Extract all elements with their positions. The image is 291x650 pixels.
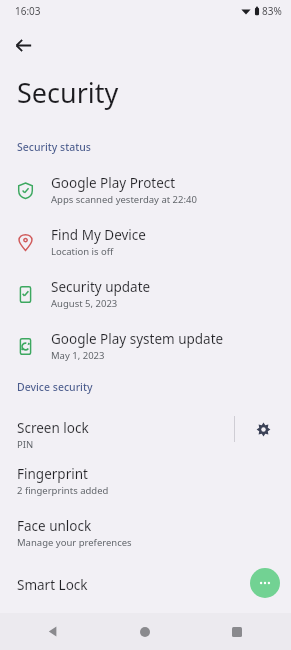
staticText: PIN [17, 438, 34, 451]
button[interactable]: Smart Lock [0, 559, 291, 611]
button[interactable]: Fingerprint [0, 455, 291, 507]
staticText: Smart Lock [17, 576, 88, 594]
staticText: Screen lock [17, 419, 89, 437]
button[interactable]: Google Play Protect [0, 164, 291, 216]
staticText: Security status [17, 140, 91, 154]
button[interactable]: Find My Device [0, 216, 291, 268]
staticText: Manage your preferences [17, 536, 132, 549]
staticText: Fingerprint [17, 465, 88, 483]
button[interactable]: Screen lock settings [235, 403, 291, 455]
staticText: No active apps [17, 634, 83, 647]
staticText: May 1, 2023 [51, 349, 105, 362]
staticText: Device security [17, 380, 93, 394]
staticText: Security [17, 74, 119, 111]
staticText: Apps scanned yesterday at 22:40 [51, 193, 197, 206]
staticText: Google Play system update [51, 330, 224, 348]
button[interactable]: Back [6, 28, 40, 62]
staticText: August 5, 2023 [51, 297, 118, 310]
staticText: Device admin apps [17, 615, 137, 633]
staticText: Location is off [51, 245, 114, 258]
button[interactable]: Home [99, 613, 191, 650]
staticText: Face unlock [17, 517, 92, 535]
button[interactable]: More options [250, 568, 280, 598]
button[interactable]: Security update [0, 268, 291, 320]
button[interactable]: Face unlock [0, 507, 291, 559]
button[interactable]: Recents [191, 613, 283, 650]
staticText: 2 fingerprints added [17, 484, 109, 497]
button[interactable]: Google Play system update [0, 320, 291, 372]
staticText: 83% [262, 4, 282, 18]
button[interactable]: Device admin apps [0, 611, 291, 650]
button[interactable]: Screen lock [0, 407, 234, 451]
button[interactable]: Back [8, 613, 99, 650]
staticText: 16:03 [15, 4, 41, 18]
staticText: Security update [51, 278, 151, 296]
staticText: Google Play Protect [51, 174, 176, 192]
staticText: Find My Device [51, 226, 146, 244]
